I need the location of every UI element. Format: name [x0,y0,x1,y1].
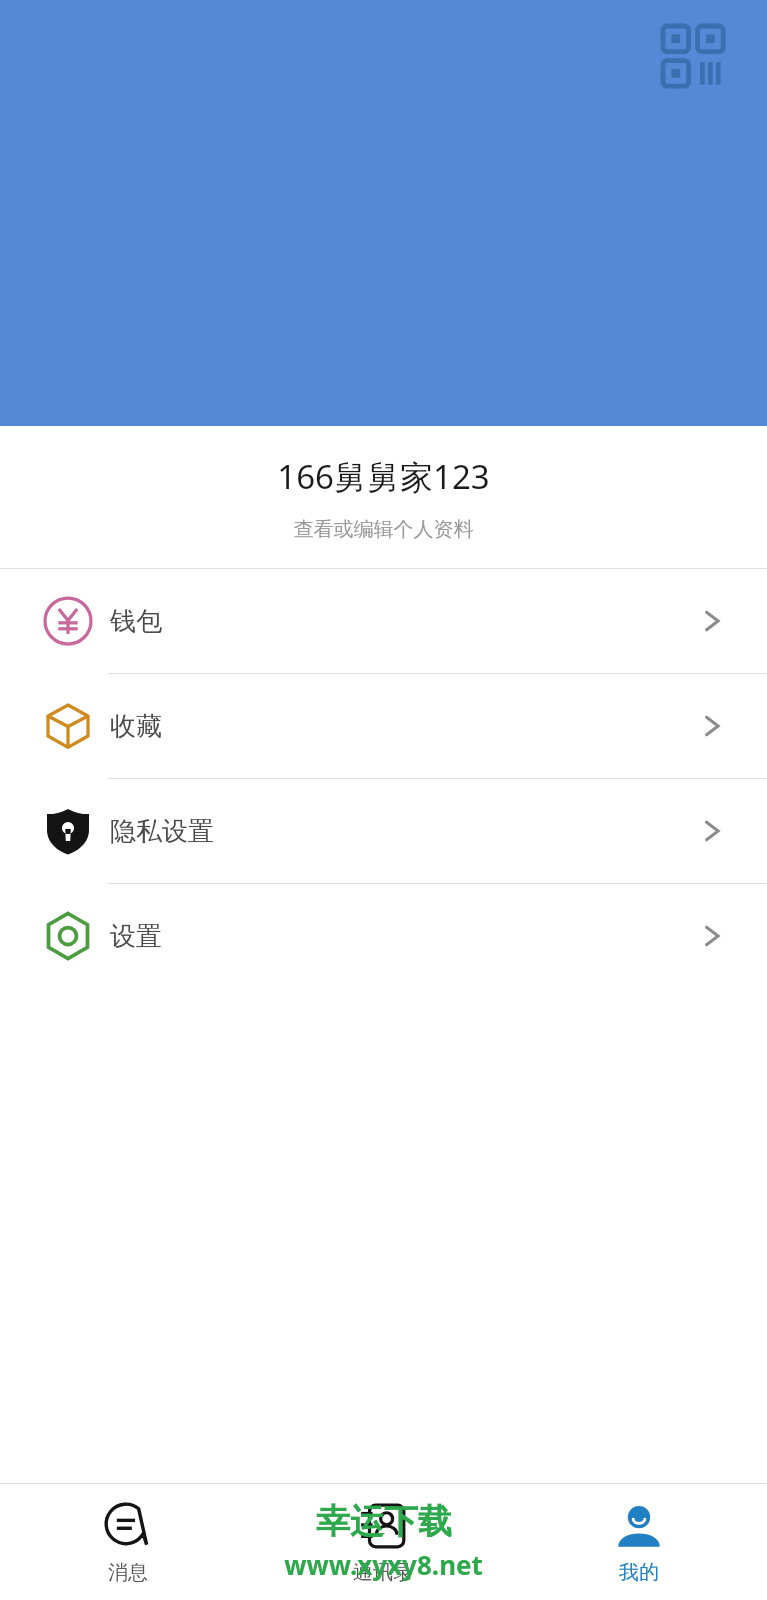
staticText: 幸运下载 [316,1500,452,1543]
button[interactable]: Scan QR code [663,26,727,90]
button[interactable]: 查看或编辑个人资料 [0,517,767,542]
staticText: 通讯录 [353,1560,413,1585]
staticText: 查看或编辑个人资料 [0,517,767,542]
button[interactable]: 隐私设置 [0,779,767,883]
button[interactable]: 钱包 [0,569,767,673]
staticText: 收藏 [110,710,162,743]
button[interactable]: 消息 [0,1484,255,1600]
button[interactable]: 通讯录 [255,1484,511,1600]
button[interactable]: 收藏 [0,674,767,778]
staticText: 消息 [108,1560,148,1585]
staticText: 166舅舅家123 [0,454,767,499]
staticText: 钱包 [110,605,162,638]
staticText: 我的 [619,1560,659,1585]
staticText: www.xyxy8.net [284,1547,483,1582]
button[interactable]: 设置 [0,884,767,988]
staticText: 隐私设置 [110,815,214,848]
staticText: 设置 [110,920,162,953]
button[interactable]: 我的 [511,1484,767,1600]
